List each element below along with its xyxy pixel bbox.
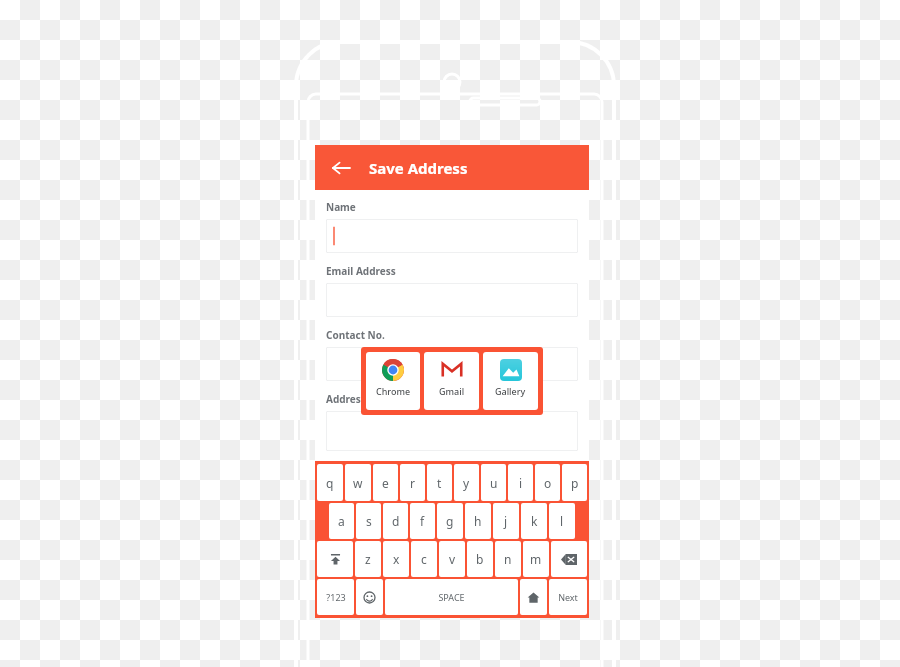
staticText: Gallery [495,385,526,397]
staticText: v [449,551,456,567]
staticText: k [531,513,538,529]
button[interactable]: f [410,503,435,539]
button[interactable]: r [400,464,425,501]
staticText: Chrome [376,385,411,397]
staticText: f [420,513,425,529]
staticText: Next [558,591,578,603]
staticText: g [446,513,454,529]
staticText: x [393,551,400,567]
button[interactable]: ?123 [317,579,354,615]
button[interactable]: q [317,464,343,501]
staticText: c [421,551,427,567]
button[interactable]: e [373,464,398,501]
staticText: r [410,475,415,491]
button[interactable] [326,219,578,253]
staticText: i [519,475,523,491]
button[interactable] [326,347,578,381]
staticText: h [474,513,482,529]
staticText: a [338,513,345,529]
staticText: Address [326,392,366,406]
button[interactable]: p [562,464,587,501]
button[interactable]: Shift [317,541,353,577]
staticText: s [366,513,372,529]
button[interactable] [326,283,578,317]
button[interactable]: i [508,464,533,501]
button[interactable]: Next [549,579,587,615]
button[interactable]: j [493,503,519,539]
button[interactable]: y [454,464,479,501]
button[interactable]: w [345,464,371,501]
button[interactable]: x [383,541,409,577]
button[interactable]: v [439,541,465,577]
staticText: Gmail [439,385,465,397]
staticText: n [504,551,512,567]
button[interactable]: b [467,541,493,577]
staticText: ?123 [326,591,346,603]
button[interactable]: Backspace [551,541,587,577]
button[interactable]: Gmail [424,352,479,410]
button[interactable]: d [383,503,408,539]
button[interactable]: Home [520,579,547,615]
staticText: l [560,513,564,529]
staticText: t [437,475,442,491]
button[interactable]: Chrome [366,352,420,410]
button[interactable]: l [549,503,575,539]
staticText: Name [326,200,356,214]
staticText: Contact No. [326,328,385,342]
staticText: o [544,475,552,491]
button[interactable]: c [411,541,437,577]
button[interactable]: SPACE [385,579,518,615]
staticText: z [365,551,371,567]
button[interactable]: Gallery [483,352,538,410]
staticText: j [504,513,508,529]
staticText: Email Address [326,264,396,278]
button[interactable]: u [481,464,506,501]
staticText: y [463,475,470,491]
staticText: SPACE [438,591,465,603]
button[interactable]: n [495,541,521,577]
staticText: b [476,551,484,567]
staticText: w [353,475,363,491]
button[interactable]: o [535,464,560,501]
staticText: d [392,513,400,529]
button[interactable] [326,411,578,451]
staticText: e [382,475,389,491]
button[interactable]: s [356,503,381,539]
button[interactable]: m [523,541,549,577]
button[interactable]: k [521,503,547,539]
button[interactable]: h [465,503,491,539]
staticText: Save Address [369,158,468,178]
button[interactable]: a [329,503,354,539]
staticText: u [490,475,498,491]
staticText: q [326,475,334,491]
staticText: m [530,551,542,567]
button[interactable]: z [355,541,381,577]
button[interactable]: Emoji [356,579,383,615]
button[interactable]: t [427,464,452,501]
staticText: p [571,475,579,491]
button[interactable]: g [437,503,463,539]
button[interactable]: Back [327,154,355,182]
